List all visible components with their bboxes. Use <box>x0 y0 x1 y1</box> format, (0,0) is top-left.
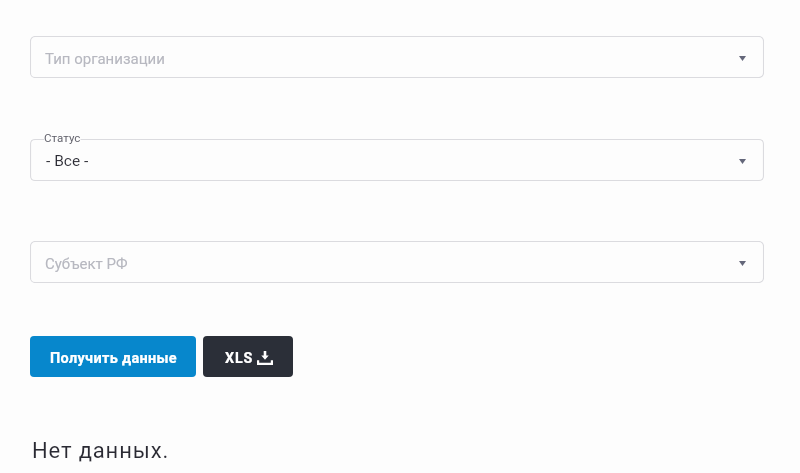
staticText: Тип организации <box>45 50 165 68</box>
button[interactable]: - Все - <box>30 139 764 181</box>
button[interactable]: Тип организации <box>30 36 764 78</box>
button[interactable]: Скачать XLS <box>203 336 293 377</box>
staticText: Получить данные <box>50 350 177 367</box>
staticText: Нет данных. <box>32 438 170 464</box>
staticText: Статус <box>44 131 81 145</box>
staticText: - Все - <box>46 152 89 170</box>
staticText: Субъект РФ <box>45 255 128 273</box>
button[interactable]: Субъект РФ <box>30 241 764 283</box>
staticText: XLS <box>225 350 254 367</box>
button[interactable]: Получить данные <box>30 336 196 377</box>
